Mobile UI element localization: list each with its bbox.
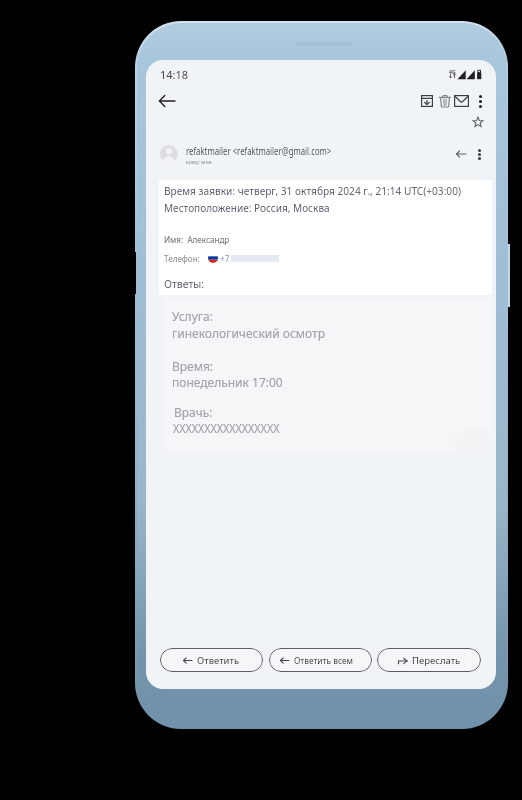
button[interactable]: Delete <box>432 88 458 114</box>
staticText: Ответить <box>197 654 240 667</box>
button[interactable]: Archive <box>414 88 440 114</box>
staticText: Ответы: <box>164 277 205 291</box>
button[interactable]: More <box>469 144 489 164</box>
staticText: Имя: Александр <box>164 233 230 245</box>
staticText: Врачь: <box>174 404 213 420</box>
button[interactable]: Back <box>153 87 181 115</box>
button[interactable]: Переслать <box>377 648 481 672</box>
button[interactable]: Ответить всем <box>269 648 372 672</box>
staticText: Услуга: <box>172 308 213 324</box>
button[interactable]: Reply <box>451 144 471 164</box>
staticText: Время: <box>172 358 214 374</box>
staticText: 14:18 <box>160 67 189 82</box>
staticText: Переслать <box>412 654 461 667</box>
button[interactable]: Star <box>469 113 486 130</box>
staticText: refaktmailer <refaktmailer@gmail.com> <box>186 143 331 158</box>
staticText: Время заявки: четверг, 31 октября 2024 г… <box>164 184 461 198</box>
button[interactable]: Ответить <box>160 648 263 672</box>
staticText: Телефон: <box>164 252 203 264</box>
button[interactable]: More options <box>467 88 493 114</box>
staticText: гинекологический осмотр <box>172 325 325 341</box>
staticText: +7 <box>220 252 230 264</box>
staticText: Местоположение: Россия, Москва <box>164 201 330 215</box>
button[interactable]: refaktmailer <refaktmailer@gmail.com> <box>146 139 496 169</box>
staticText: Ответить всем <box>294 654 354 667</box>
staticText: кому: мне <box>186 158 212 166</box>
staticText: понедельник 17:00 <box>172 374 283 390</box>
staticText: 4G <box>449 68 456 76</box>
button[interactable]: Mark as unread <box>448 88 474 114</box>
staticText: XXXXXXXXXXXXXXXXX <box>173 420 280 436</box>
